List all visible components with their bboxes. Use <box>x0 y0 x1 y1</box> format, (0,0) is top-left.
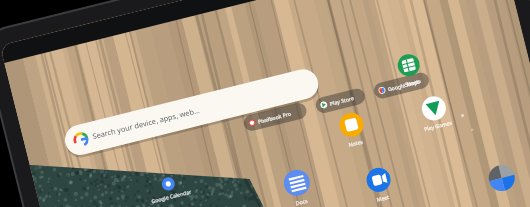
button[interactable]: Chrome OS tablet home screen <box>0 0 530 207</box>
